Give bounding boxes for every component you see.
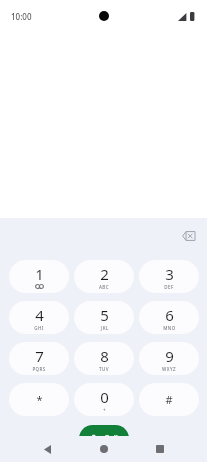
button[interactable]: 2 bbox=[74, 260, 134, 293]
button[interactable]: Back bbox=[34, 436, 60, 462]
staticText: GHI bbox=[34, 325, 44, 331]
staticText: 7 bbox=[35, 346, 44, 366]
staticText: + bbox=[103, 407, 106, 413]
button[interactable]: 7 bbox=[9, 342, 69, 375]
button[interactable]: * bbox=[9, 383, 69, 416]
staticText: DEF bbox=[164, 284, 174, 290]
staticText: MNO bbox=[163, 325, 176, 331]
staticText: Call bbox=[104, 433, 118, 444]
button[interactable]: Backspace bbox=[174, 222, 202, 250]
button[interactable]: Home bbox=[91, 436, 117, 462]
staticText: * bbox=[36, 392, 43, 407]
staticText: WXYZ bbox=[162, 366, 176, 372]
staticText: 2 bbox=[100, 264, 109, 284]
button[interactable]: 4 bbox=[9, 301, 69, 334]
staticText: PQRS bbox=[32, 366, 46, 372]
staticText: JKL bbox=[101, 325, 109, 331]
staticText: 6 bbox=[165, 305, 174, 325]
staticText: ABC bbox=[99, 284, 109, 290]
button[interactable]: 8 bbox=[74, 342, 134, 375]
button[interactable]: Call bbox=[79, 425, 129, 452]
staticText: 5 bbox=[100, 305, 109, 325]
button[interactable]: 5 bbox=[74, 301, 134, 334]
button[interactable]: 0 bbox=[74, 383, 134, 416]
staticText: 1 bbox=[35, 264, 44, 284]
button[interactable]: 3 bbox=[139, 260, 199, 293]
button[interactable]: 9 bbox=[139, 342, 199, 375]
staticText: 10:00 bbox=[11, 11, 32, 22]
button[interactable]: Recent apps bbox=[147, 436, 173, 462]
staticText: 9 bbox=[165, 346, 174, 366]
button[interactable]: # bbox=[139, 383, 199, 416]
staticText: # bbox=[165, 392, 173, 407]
staticText: TUV bbox=[99, 366, 109, 372]
button[interactable]: 1 bbox=[9, 260, 69, 293]
staticText: 0 bbox=[100, 387, 109, 407]
button[interactable]: 6 bbox=[139, 301, 199, 334]
staticText: 4 bbox=[35, 305, 44, 325]
staticText: 3 bbox=[165, 264, 174, 284]
staticText: 8 bbox=[100, 346, 109, 366]
